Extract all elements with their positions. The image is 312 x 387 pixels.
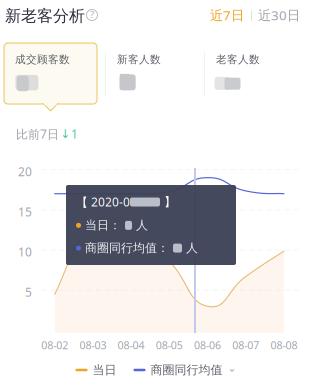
button[interactable]: 成交顾客数 xyxy=(4,43,97,104)
button[interactable]: 近7日 xyxy=(208,6,246,24)
button[interactable]: 老客人数 xyxy=(205,43,299,104)
button[interactable]: 帮助 xyxy=(84,7,100,23)
staticText: ? xyxy=(90,8,94,21)
staticText: 5 xyxy=(25,284,32,300)
button[interactable]: 近30日 xyxy=(257,6,301,24)
staticText: 商圈同行均值： xyxy=(85,241,169,255)
staticText: 新老客分析 xyxy=(5,6,85,26)
staticText: 08-02 xyxy=(41,338,68,352)
staticText: 近30日 xyxy=(258,6,300,24)
staticText: 近7日 xyxy=(210,6,244,24)
staticText: 老客人数 xyxy=(216,53,260,66)
staticText: 人 xyxy=(136,218,148,233)
staticText: 人 xyxy=(186,241,198,255)
staticText: 08-08 xyxy=(270,338,297,352)
button[interactable]: 商圈同行均值 xyxy=(133,363,236,377)
staticText: 20 xyxy=(18,164,32,179)
staticText: 商圈同行均值 xyxy=(150,363,222,377)
staticText: 08-07 xyxy=(232,338,259,352)
staticText: 成交顾客数 xyxy=(15,53,70,66)
staticText: 15 xyxy=(18,204,32,220)
staticText: ⌄ xyxy=(227,362,236,374)
staticText: 当日 xyxy=(92,363,116,377)
staticText: 10 xyxy=(18,244,32,260)
staticText: 08-04 xyxy=(118,338,145,352)
staticText: 08-06 xyxy=(194,338,221,352)
staticText: 当日： xyxy=(85,218,121,233)
staticText: ↓ xyxy=(60,127,70,141)
staticText: 新客人数 xyxy=(117,53,161,66)
staticText: 比前7日 xyxy=(16,126,59,142)
staticText: 08-05 xyxy=(156,338,183,352)
staticText: 1 xyxy=(71,126,78,142)
button[interactable]: 新客人数 xyxy=(106,43,200,104)
staticText: 】 xyxy=(160,195,176,209)
staticText: 08-03 xyxy=(79,338,106,352)
staticText: 【 2020-0 xyxy=(76,194,130,210)
